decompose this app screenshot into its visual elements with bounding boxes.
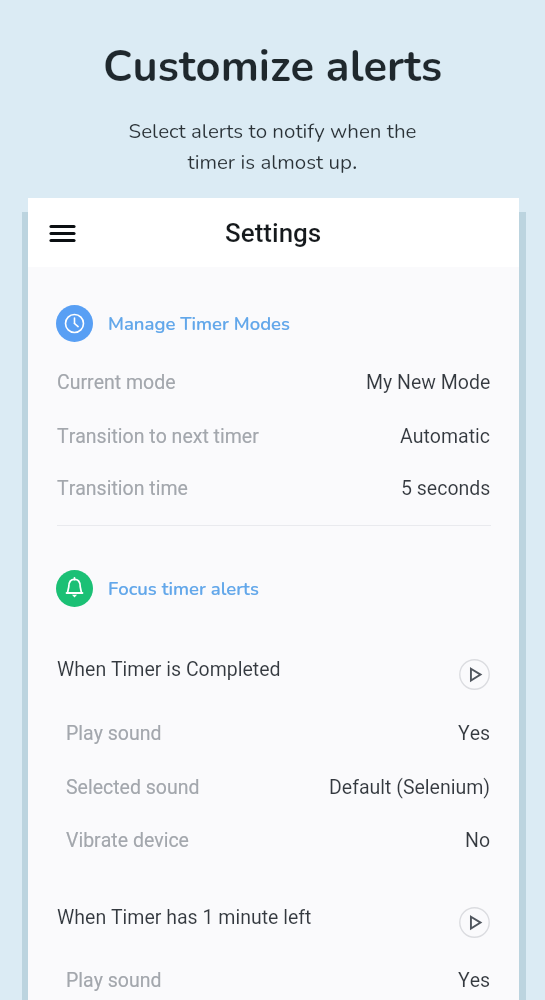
button[interactable]: Manage Timer Modes [56, 299, 291, 348]
button[interactable]: Vibrate device [66, 829, 189, 852]
staticText: Transition to next timer [57, 425, 259, 448]
button[interactable]: No [465, 829, 491, 852]
button[interactable]: My New Mode [366, 371, 491, 394]
staticText: When Timer has 1 minute left [57, 906, 312, 929]
staticText: Manage Timer Modes [108, 311, 291, 336]
staticText: Settings [225, 218, 322, 248]
staticText: Play sound [66, 722, 162, 745]
button[interactable]: Play sound [66, 722, 162, 745]
button[interactable]: Yes [458, 969, 491, 992]
staticText: Select alerts to notify when the timer i… [0, 117, 545, 176]
button[interactable]: Current mode [57, 371, 176, 394]
button[interactable]: Default (Selenium) [329, 776, 491, 799]
staticText: Focus timer alerts [108, 576, 259, 601]
staticText: Selected sound [66, 776, 200, 799]
button[interactable]: Selected sound [66, 776, 200, 799]
button[interactable]: When Timer has 1 minute left [57, 906, 312, 929]
staticText: Current mode [57, 371, 176, 394]
staticText: Vibrate device [66, 829, 189, 852]
staticText: When Timer is Completed [57, 658, 281, 681]
button[interactable]: Automatic [400, 425, 491, 448]
button[interactable]: Transition to next timer [57, 425, 259, 448]
button[interactable]: When Timer is Completed [57, 658, 281, 681]
button[interactable]: Transition time [57, 477, 188, 500]
button[interactable]: 5 seconds [401, 477, 491, 500]
button[interactable]: Focus timer alerts [56, 564, 259, 613]
staticText: Customize alerts [0, 37, 545, 96]
button[interactable]: Open navigation menu [40, 211, 85, 256]
staticText: Transition time [57, 477, 188, 500]
staticText: Play sound [66, 969, 162, 992]
button[interactable]: Expand section [459, 659, 490, 690]
button[interactable]: Expand section [459, 907, 490, 938]
button[interactable]: Play sound [66, 969, 162, 992]
button[interactable]: Yes [458, 722, 491, 745]
